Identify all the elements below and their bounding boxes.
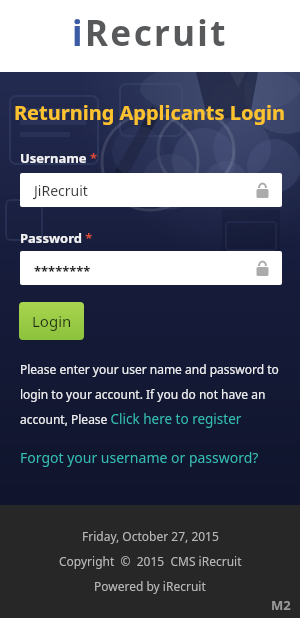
- staticText: Please enter your user name and password…: [20, 361, 279, 377]
- staticText: login to your account. If you do not hav…: [20, 386, 266, 402]
- button[interactable]: JiRecruit: [20, 173, 282, 207]
- staticText: i: [72, 9, 85, 57]
- staticText: Friday, October 27, 2015: [82, 528, 219, 544]
- staticText: ********: [34, 262, 91, 280]
- staticText: Returning Applicants Login: [14, 99, 286, 126]
- staticText: Recruit: [85, 9, 228, 57]
- staticText: M2: [271, 596, 291, 614]
- button[interactable]: Forgot your username or password?: [20, 448, 259, 467]
- staticText: JiRecruit: [34, 181, 88, 200]
- button[interactable]: ********: [20, 251, 282, 285]
- staticText: Powered by iRecruit: [94, 578, 206, 594]
- button[interactable]: Login: [19, 302, 84, 340]
- button[interactable]: account, Please Click here to register: [20, 410, 242, 428]
- staticText: Login: [32, 311, 72, 331]
- staticText: Password *: [20, 229, 93, 247]
- staticText: Username *: [20, 149, 98, 167]
- staticText: Copyright © 2015 CMS iRecruit: [59, 553, 242, 569]
